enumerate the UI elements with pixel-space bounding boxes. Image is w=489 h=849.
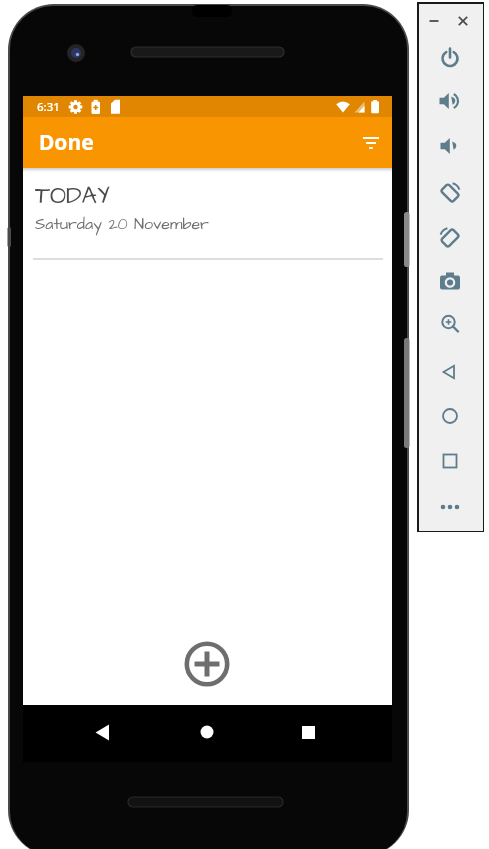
button[interactable]	[435, 309, 465, 339]
button[interactable]	[294, 718, 322, 746]
staticText: TODAY	[35, 179, 110, 212]
button[interactable]	[435, 131, 465, 161]
staticText: 6:31	[37, 99, 60, 115]
button[interactable]	[435, 266, 465, 296]
button[interactable]	[426, 13, 442, 29]
button[interactable]	[181, 638, 233, 690]
button[interactable]	[435, 446, 465, 476]
button[interactable]	[435, 177, 465, 207]
button[interactable]	[435, 492, 465, 522]
button[interactable]	[351, 123, 391, 163]
staticText: Done	[39, 128, 94, 157]
button[interactable]	[435, 43, 465, 73]
button[interactable]	[455, 13, 471, 29]
button[interactable]	[89, 718, 117, 746]
staticText: Saturday 20 November	[35, 213, 209, 235]
button[interactable]	[435, 357, 465, 387]
button[interactable]	[435, 401, 465, 431]
button[interactable]	[435, 222, 465, 252]
button[interactable]	[435, 86, 465, 116]
button[interactable]	[193, 718, 221, 746]
